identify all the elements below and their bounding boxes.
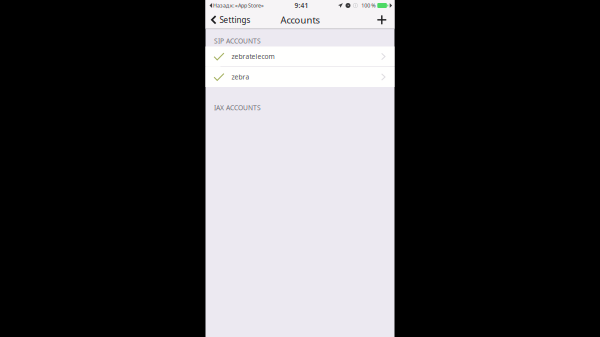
staticText: Settings xyxy=(219,14,250,25)
staticText: IAX ACCOUNTS xyxy=(214,103,261,112)
staticText: Accounts xyxy=(280,14,319,26)
staticText: zebratelecom xyxy=(231,52,274,61)
button[interactable]: Settings xyxy=(205,11,256,28)
button[interactable]: Add account xyxy=(369,11,394,28)
staticText: zebra xyxy=(231,73,249,81)
staticText: SIP ACCOUNTS xyxy=(214,36,261,45)
staticText: Назад к: «App Store» xyxy=(213,2,264,9)
staticText: 100 % xyxy=(361,2,375,9)
staticText: 9:41 xyxy=(294,1,308,10)
button[interactable]: zebratelecom xyxy=(205,46,394,66)
button[interactable]: zebra xyxy=(205,67,394,87)
